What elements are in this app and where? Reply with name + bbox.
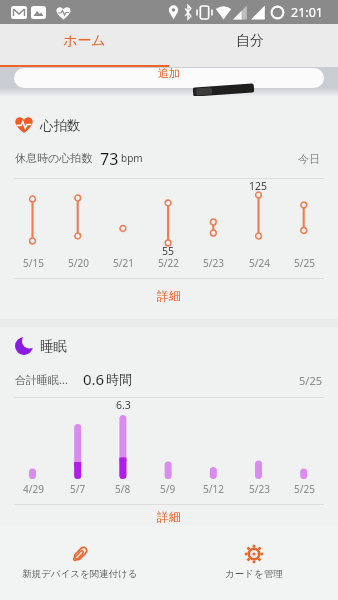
staticText: bpm — [121, 151, 143, 165]
staticText: 休息時の心拍数 — [15, 151, 93, 165]
staticText: 5/7 — [70, 482, 86, 496]
staticText: 5/23 — [249, 482, 270, 496]
staticText: 合計睡眠... — [15, 372, 68, 387]
staticText: 5/20 — [68, 256, 89, 270]
staticText: 4/29 — [23, 482, 44, 496]
staticText: 73 — [100, 148, 119, 168]
staticText: 時間 — [106, 371, 132, 387]
staticText: 5/8 — [115, 482, 131, 496]
button[interactable]: 自分 — [165, 24, 334, 58]
button[interactable]: 追加 — [14, 68, 324, 88]
staticText: 追加 — [158, 68, 180, 80]
staticText: 5/22 — [158, 256, 179, 270]
staticText: 5/12 — [203, 482, 224, 496]
button[interactable]: 新規デバイスを関連付ける — [0, 525, 164, 587]
button[interactable]: 詳細 — [119, 285, 219, 305]
staticText: 自分 — [236, 32, 264, 50]
staticText: 詳細 — [157, 509, 181, 524]
staticText: 125 — [249, 179, 268, 193]
staticText: 詳細 — [157, 288, 181, 303]
staticText: 5/25 — [294, 482, 315, 496]
staticText: 0.6 — [83, 369, 105, 389]
staticText: ホーム — [63, 32, 106, 50]
button[interactable]: 詳細 — [119, 507, 219, 525]
staticText: 睡眠 — [40, 338, 67, 355]
staticText: 5/15 — [23, 256, 44, 270]
staticText: 21:01 — [291, 4, 323, 21]
staticText: 5/25 — [299, 373, 322, 388]
staticText: 新規デバイスを関連付ける — [22, 568, 138, 580]
staticText: 5/24 — [249, 256, 270, 270]
staticText: 5/9 — [160, 482, 176, 496]
staticText: 6.3 — [116, 398, 131, 412]
staticText: 5/25 — [294, 256, 315, 270]
button[interactable]: カードを管理 — [169, 525, 338, 587]
staticText: 55 — [162, 244, 175, 258]
staticText: 心拍数 — [40, 117, 81, 134]
staticText: 5/23 — [203, 256, 224, 270]
staticText: 今日 — [298, 152, 320, 166]
button[interactable]: ホーム — [0, 24, 169, 58]
staticText: カードを管理 — [225, 568, 283, 580]
staticText: 5/21 — [113, 256, 134, 270]
